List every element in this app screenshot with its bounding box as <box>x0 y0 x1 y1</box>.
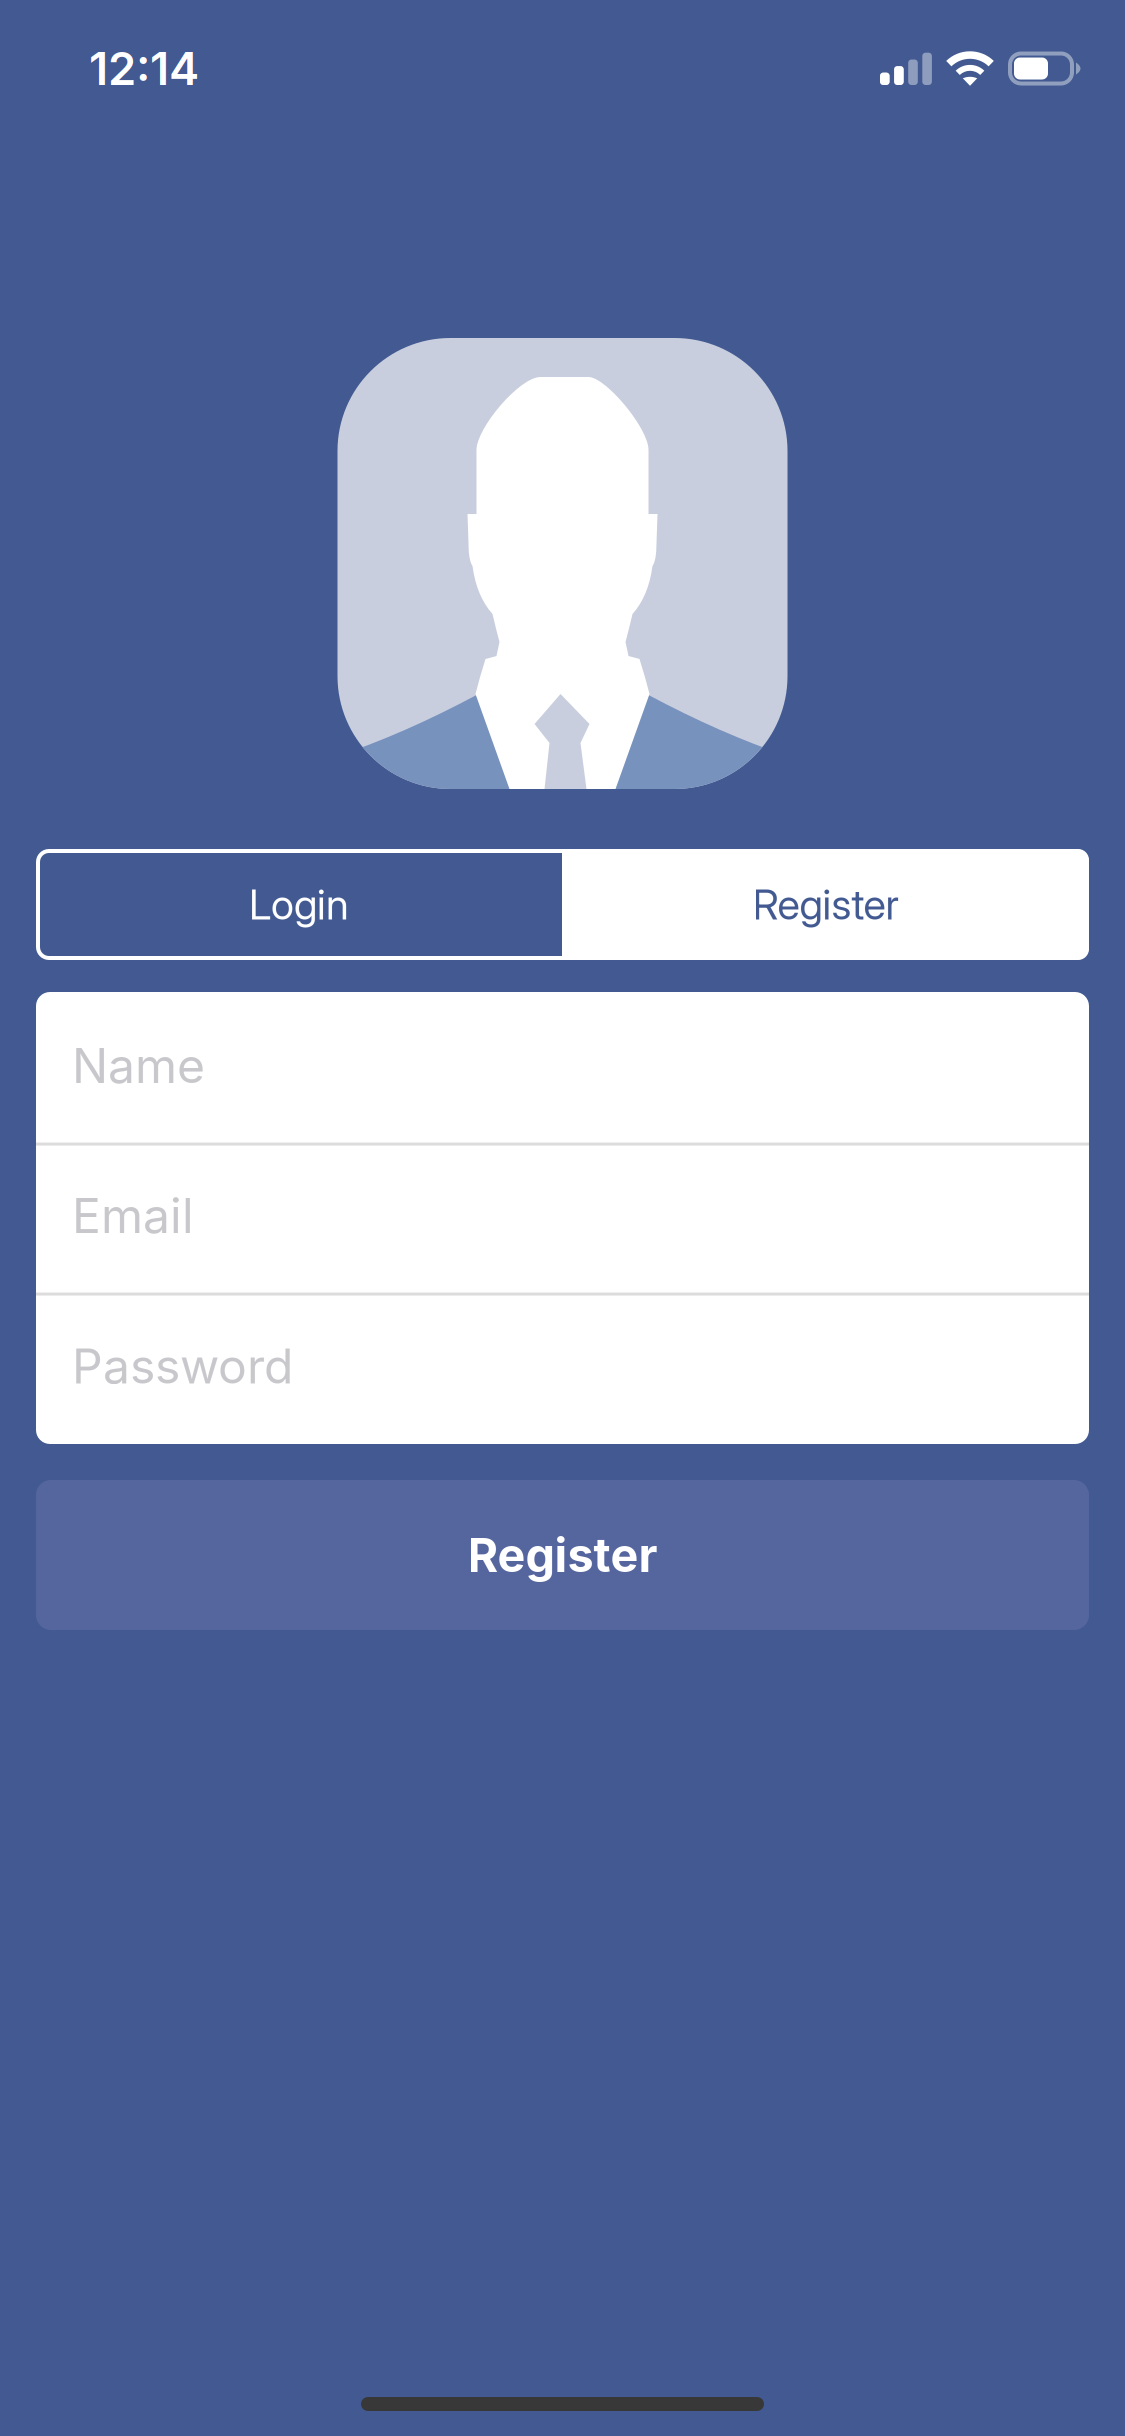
staticText: 12:14 <box>89 41 199 96</box>
staticText: Login <box>249 879 349 929</box>
button[interactable]: Register <box>562 849 1089 960</box>
staticText: Email <box>72 1186 194 1245</box>
button[interactable]: Password <box>36 1292 1089 1443</box>
button[interactable]: Login <box>36 849 562 960</box>
button[interactable]: Name <box>36 992 1089 1142</box>
button[interactable]: Register <box>36 1480 1089 1630</box>
staticText: Register <box>467 1527 657 1583</box>
staticText: Register <box>752 879 898 929</box>
staticText: Name <box>72 1036 205 1095</box>
staticText: Password <box>72 1337 293 1395</box>
button[interactable]: Email <box>36 1142 1089 1292</box>
